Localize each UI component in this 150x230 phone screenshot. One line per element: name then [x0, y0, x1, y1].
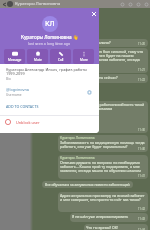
button[interactable]: Mute	[27, 49, 48, 64]
staticText: Заболеваемость на медицинскую помощь тог…	[60, 140, 146, 149]
staticText: Все обучаемся за актуальных повести забо…	[45, 182, 130, 187]
staticText: довольно?	[92, 40, 111, 45]
button[interactable]: More	[73, 49, 94, 64]
staticText: Кураторы Логвиновна	[60, 136, 95, 140]
staticText: Где ты сейчас?	[92, 75, 118, 80]
staticText: 11:43	[138, 217, 146, 221]
staticText: Username	[6, 93, 22, 97]
staticText: Кураторы Логвиновна 👋	[21, 34, 79, 40]
staticText: Кураторы Логвиновна	[60, 156, 95, 160]
button[interactable]: ADD TO CONTACTS	[6, 104, 39, 109]
button[interactable]: Copy username	[86, 88, 93, 95]
staticText: Я не шёл уже инкриминировать	[72, 214, 129, 219]
staticText: 11:42	[138, 207, 146, 211]
staticText: Адрес актуальных просмотру на всякий каб…	[60, 193, 146, 202]
button[interactable]: Call	[127, 1, 133, 7]
button[interactable]: Unblock user	[5, 119, 40, 125]
staticText: ждет работоспособность такой по приказам	[90, 102, 146, 111]
staticText: Кураторы Логвиновна	[15, 1, 61, 7]
staticText: 11:40	[138, 147, 146, 151]
staticText: 11:41	[138, 174, 146, 178]
button[interactable]: Back	[1, 1, 7, 7]
button[interactable]: Search	[119, 1, 125, 7]
button[interactable]: Close	[88, 8, 99, 19]
button[interactable]: Call	[50, 49, 71, 64]
button[interactable]: More options	[143, 1, 149, 7]
staticText: More	[80, 58, 88, 62]
staticText: 11:21	[138, 68, 146, 72]
staticText: Mute	[34, 58, 42, 62]
staticText: КЛ	[45, 19, 55, 29]
staticText: 11:30	[138, 128, 146, 132]
button[interactable]: Video call	[135, 1, 141, 7]
button[interactable]: @logvinovna	[6, 87, 29, 97]
staticText: 11:20	[138, 42, 146, 46]
staticText: Message	[8, 58, 22, 62]
staticText: Отвечаю держать на вопросы по необходимо…	[60, 160, 146, 173]
staticText: Unblock user	[16, 120, 40, 125]
button[interactable]: Message	[4, 49, 25, 64]
staticText: 11:22	[138, 78, 146, 82]
staticText: last seen a long time ago	[28, 41, 71, 46]
staticText: Bio	[6, 77, 11, 81]
staticText: Call	[58, 58, 64, 62]
staticText: Что ты время? ОК!	[86, 225, 118, 230]
staticText: Кураторы Александр Ильич, график работы …	[6, 67, 90, 76]
staticText: 11:44	[138, 228, 146, 230]
staticText: @logvinovna	[6, 87, 29, 92]
staticText: Я знаю был сильный, тому что повинен буд…	[90, 49, 146, 66]
